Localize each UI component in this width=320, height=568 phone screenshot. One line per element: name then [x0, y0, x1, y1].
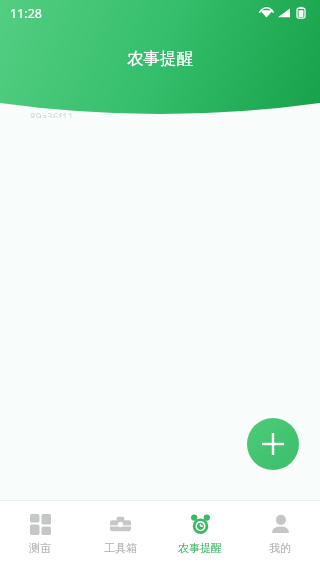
- button[interactable]: 工具箱: [80, 501, 160, 568]
- button[interactable]: 测亩: [0, 501, 80, 568]
- staticText: 农事提醒: [178, 541, 222, 555]
- button[interactable]: 添加提醒: [247, 418, 299, 470]
- staticText: 我的: [269, 541, 291, 555]
- staticText: 工具箱: [104, 541, 137, 555]
- button[interactable]: 我的: [240, 501, 320, 568]
- staticText: 农事提醒: [127, 48, 193, 69]
- staticText: 11:28: [10, 5, 42, 22]
- staticText: 测亩: [29, 541, 51, 555]
- button[interactable]: 农事提醒: [160, 501, 240, 568]
- staticText: 89a36f11: [30, 110, 74, 118]
